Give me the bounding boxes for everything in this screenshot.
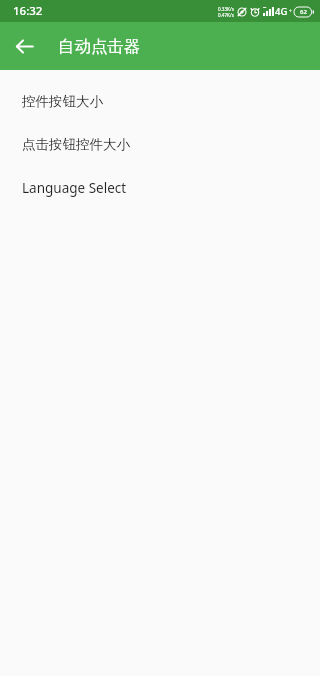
staticText: Language Select [22, 179, 127, 197]
staticText: 0.33K/s [218, 6, 234, 12]
staticText: 自动点击器 [58, 36, 141, 57]
button[interactable]: Language Select [0, 166, 320, 209]
staticText: 62 [300, 8, 307, 16]
staticText: 点击按钮控件大小 [22, 136, 130, 153]
staticText: 4G [275, 5, 288, 18]
button[interactable]: 返回 [6, 28, 42, 64]
button[interactable]: 点击按钮控件大小 [0, 123, 320, 166]
staticText: 控件按钮大小 [22, 93, 103, 110]
staticText: 0.47K/s [218, 12, 234, 18]
staticText: + [289, 8, 292, 15]
staticText: 16:32 [13, 3, 43, 19]
button[interactable]: 控件按钮大小 [0, 80, 320, 123]
